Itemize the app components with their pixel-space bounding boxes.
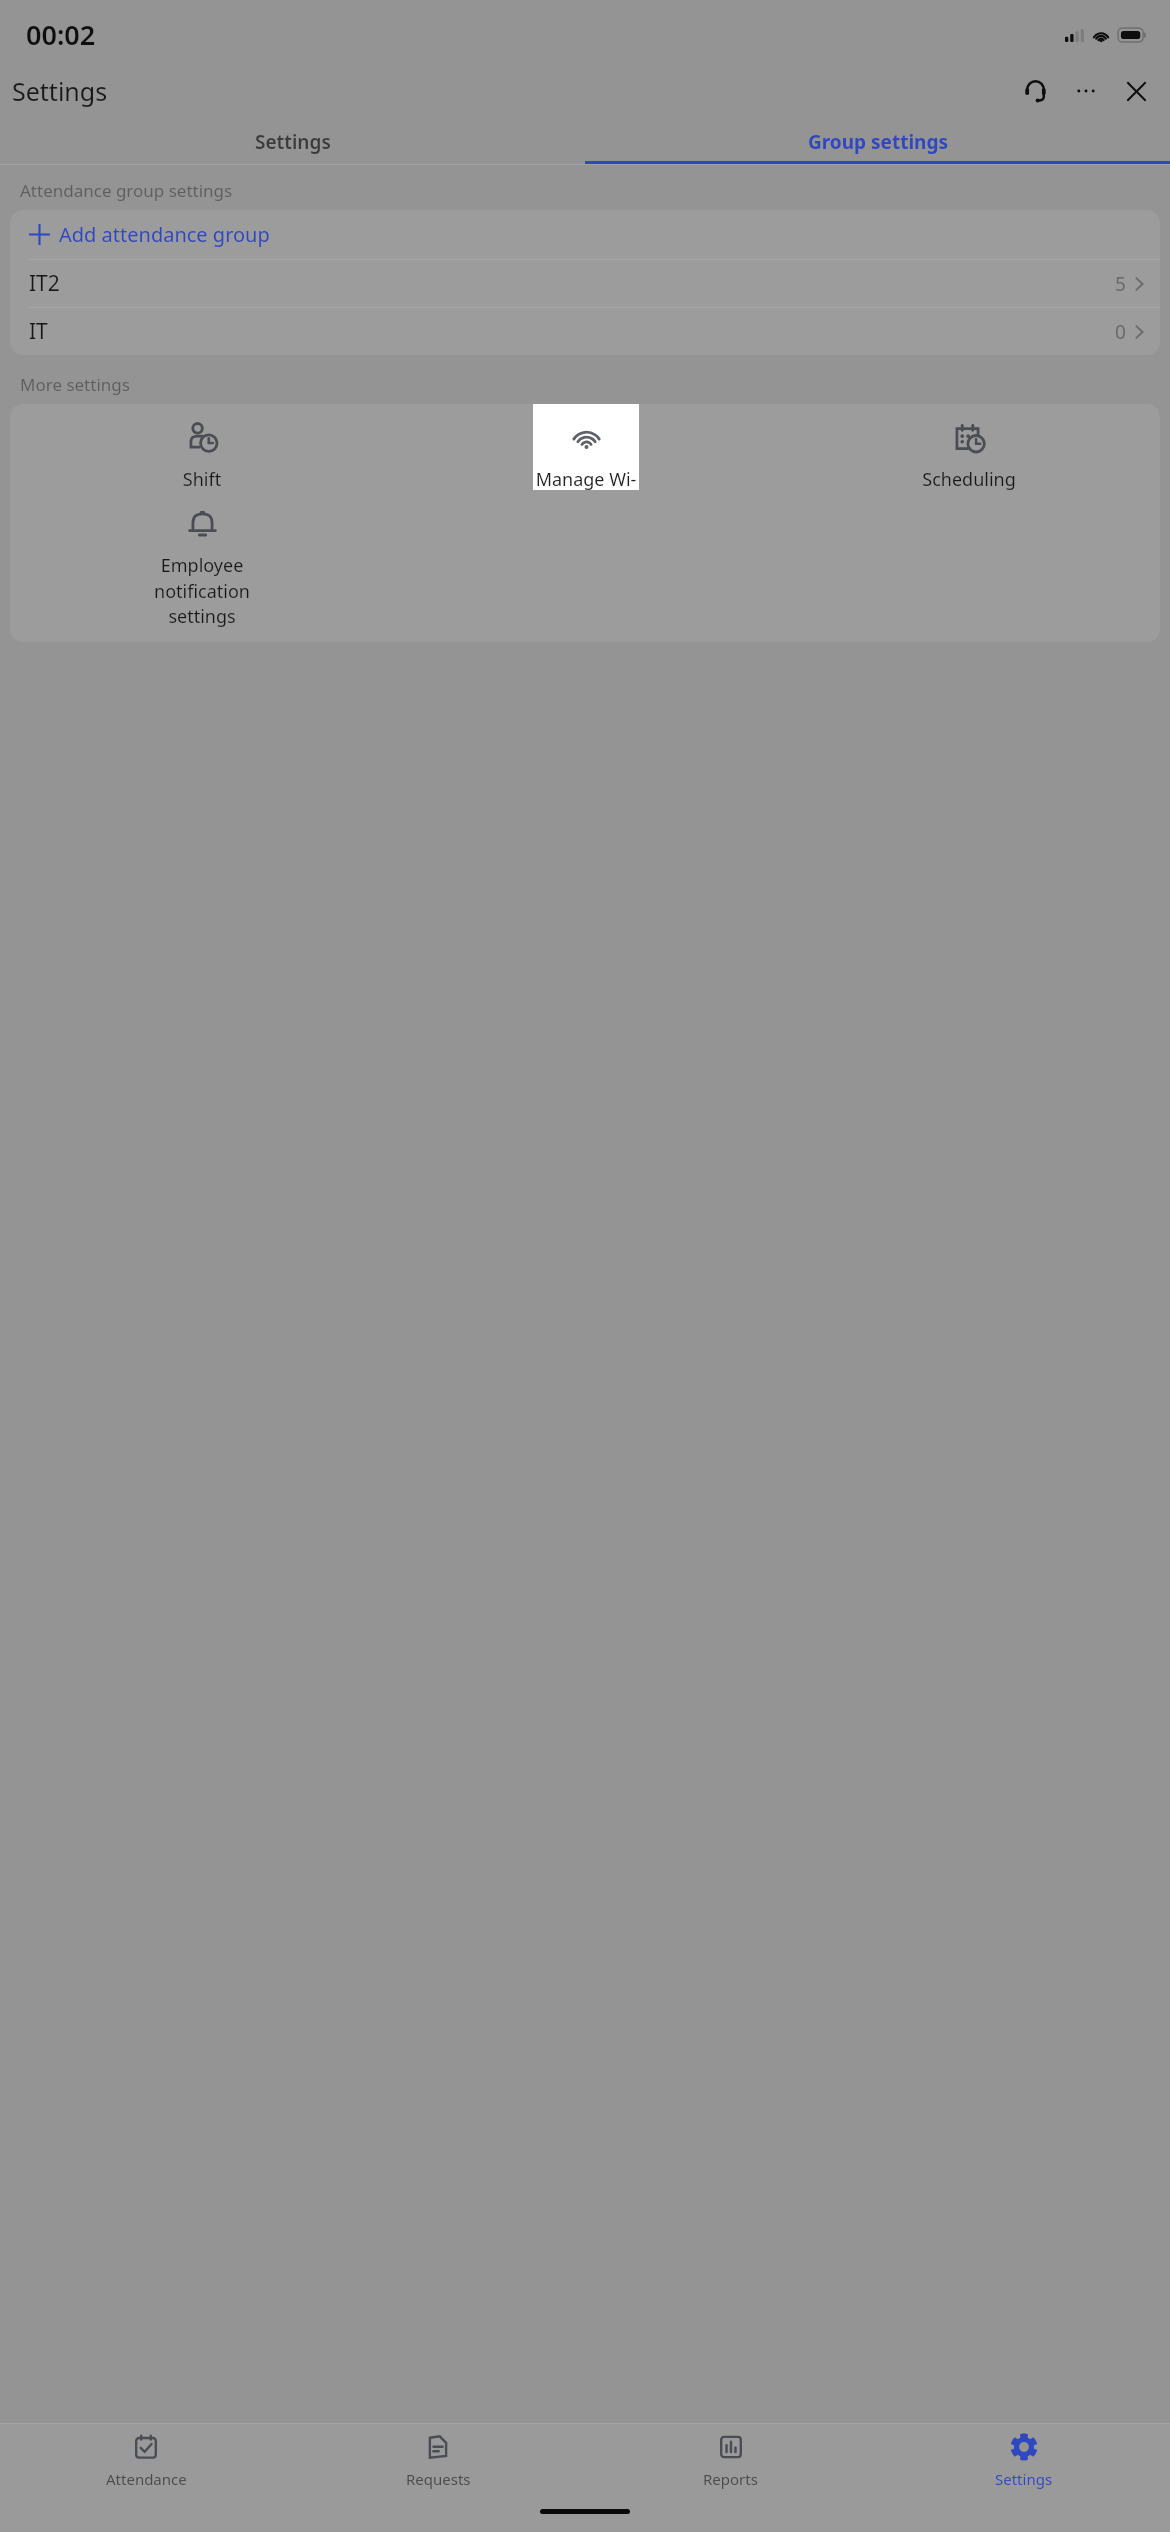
button[interactable]: Support [1014,69,1058,113]
staticText: Requests [406,2469,471,2489]
button[interactable]: Reports [584,2424,877,2497]
staticText: Employee notification settings [154,553,250,628]
button[interactable]: Close [1114,69,1158,113]
button[interactable]: Settings [877,2424,1170,2497]
staticText: Settings [12,74,108,108]
staticText: Reports [703,2469,758,2489]
button[interactable]: Requests [292,2424,584,2497]
button[interactable]: IT [10,308,1160,355]
staticText: Attendance group settings [20,179,233,202]
staticText: More settings [20,373,130,396]
button[interactable]: Manage Wi-Fi [533,404,639,490]
button[interactable]: Attendance [0,2424,292,2497]
button[interactable]: Shift management [10,404,394,490]
button[interactable]: Scheduling Management [777,404,1160,490]
staticText: Group settings [808,129,948,155]
button[interactable]: IT2 [10,260,1160,307]
button[interactable]: More options [1064,69,1108,113]
button[interactable]: Add attendance group [10,210,1160,259]
button[interactable]: Employee notification settings [10,490,393,628]
staticText: Scheduling Management [912,467,1026,490]
button[interactable]: Settings [0,119,585,164]
staticText: Add attendance group [59,221,270,248]
staticText: Manage Wi-Fi [533,467,639,490]
staticText: 0 [1115,319,1126,345]
staticText: 5 [1115,271,1126,297]
staticText: IT [29,317,48,346]
staticText: Settings [995,2469,1053,2489]
button[interactable]: Group settings [585,119,1170,164]
staticText: IT2 [29,269,60,298]
staticText: 00:02 [26,16,96,53]
staticText: Attendance [106,2469,187,2489]
staticText: Shift management [145,467,259,490]
staticText: Settings [255,129,331,155]
